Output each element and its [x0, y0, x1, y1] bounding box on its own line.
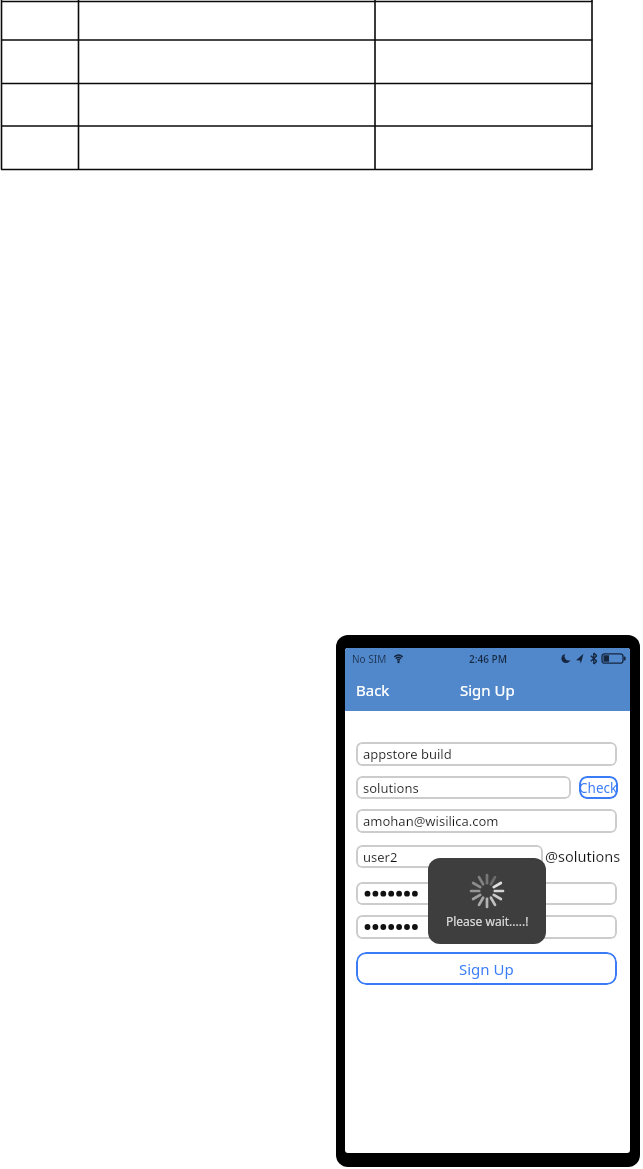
button[interactable]: Back: [356, 680, 390, 700]
staticText: Sign Up: [459, 959, 514, 979]
button[interactable]: amohan@wisilica.com: [356, 809, 617, 833]
button[interactable]: [356, 882, 617, 905]
staticText: appstore build: [363, 745, 452, 763]
staticText: Check: [579, 779, 618, 797]
button[interactable]: Check: [579, 776, 618, 799]
staticText: Please wait.....!: [446, 913, 529, 929]
staticText: No SIM: [352, 652, 387, 666]
staticText: Back: [356, 680, 390, 700]
button[interactable]: appstore build: [356, 742, 617, 766]
staticText: Sign Up: [460, 680, 515, 700]
staticText: amohan@wisilica.com: [363, 812, 499, 830]
button[interactable]: Sign Up: [356, 952, 617, 985]
staticText: solutions: [363, 779, 419, 797]
staticText: user2: [363, 848, 398, 866]
staticText: @solutions: [545, 846, 621, 866]
staticText: 2:46 PM: [469, 652, 507, 665]
button[interactable]: user2: [356, 845, 543, 868]
button[interactable]: solutions: [356, 776, 571, 799]
button[interactable]: [356, 915, 617, 939]
